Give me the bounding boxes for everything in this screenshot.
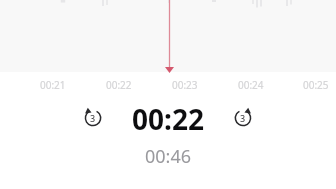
button[interactable]: Forward 3 seconds [226,101,260,135]
staticText: 3 [90,112,96,124]
staticText: 00:22 [106,78,132,92]
staticText: 00:23 [172,78,198,92]
staticText: 3 [240,112,246,124]
staticText: 00:25 [303,78,329,92]
staticText: 00:21 [40,78,66,92]
staticText: 00:24 [238,78,264,92]
button[interactable]: Rewind 3 seconds [76,101,110,135]
button[interactable]: 00:22 [132,100,204,136]
staticText: 00:46 [145,144,192,169]
staticText: 00:22 [132,100,204,136]
